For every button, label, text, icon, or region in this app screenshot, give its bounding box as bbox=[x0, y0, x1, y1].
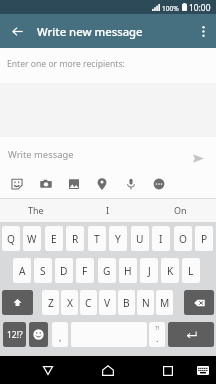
staticText: D bbox=[60, 264, 68, 278]
button[interactable]: Location bbox=[88, 174, 116, 194]
button[interactable]: Gallery bbox=[60, 174, 88, 194]
button[interactable]: The bbox=[0, 198, 72, 222]
button[interactable]: More options bbox=[190, 14, 216, 48]
button[interactable]: Recent apps bbox=[154, 356, 182, 384]
staticText: O bbox=[179, 232, 187, 246]
button[interactable]: B bbox=[118, 290, 135, 315]
button[interactable]: R bbox=[66, 226, 84, 251]
staticText: S bbox=[40, 264, 46, 278]
button[interactable]: Backspace bbox=[184, 290, 214, 315]
button[interactable]: A bbox=[13, 258, 31, 283]
staticText: On bbox=[174, 204, 187, 216]
button[interactable]: Q bbox=[2, 226, 20, 251]
staticText: ?! bbox=[155, 324, 160, 332]
staticText: . bbox=[156, 332, 159, 344]
staticText: U bbox=[136, 232, 144, 246]
button[interactable]: ?! bbox=[149, 322, 165, 347]
staticText: L bbox=[188, 264, 194, 278]
staticText: , bbox=[59, 331, 62, 343]
button[interactable]: X bbox=[61, 290, 78, 315]
button[interactable]: G bbox=[98, 258, 116, 283]
button[interactable]: M bbox=[156, 290, 173, 315]
staticText: K bbox=[167, 264, 174, 278]
button[interactable]: H bbox=[119, 258, 137, 283]
staticText: 100% bbox=[162, 4, 179, 13]
button[interactable]: V bbox=[99, 290, 116, 315]
button[interactable]: Voice message bbox=[117, 174, 145, 194]
staticText: Write new message bbox=[37, 24, 143, 39]
button[interactable]: Camera bbox=[32, 174, 60, 194]
button[interactable]: O bbox=[174, 226, 192, 251]
staticText: A bbox=[19, 264, 26, 278]
staticText: W bbox=[27, 232, 37, 246]
button[interactable]: , bbox=[52, 322, 68, 347]
button[interactable]: Sticker bbox=[3, 174, 31, 194]
staticText: T bbox=[94, 232, 100, 246]
button[interactable]: P bbox=[195, 226, 213, 251]
button[interactable]: Home bbox=[94, 356, 122, 384]
button[interactable]: F bbox=[76, 258, 94, 283]
staticText: 12!? bbox=[7, 329, 23, 341]
staticText: Q bbox=[7, 232, 15, 246]
staticText: J bbox=[148, 264, 151, 278]
staticText: 10:00 bbox=[189, 2, 211, 13]
button[interactable]: J bbox=[140, 258, 158, 283]
staticText: I bbox=[106, 204, 110, 216]
staticText: Write message bbox=[8, 148, 74, 161]
button[interactable]: Back bbox=[6, 14, 28, 48]
button[interactable]: E bbox=[45, 226, 63, 251]
button[interactable]: Y bbox=[109, 226, 127, 251]
staticText: M bbox=[160, 296, 170, 310]
staticText: F bbox=[82, 264, 88, 278]
button[interactable]: Hide keyboard bbox=[190, 356, 216, 384]
button[interactable]: More bbox=[145, 174, 173, 194]
staticText: P bbox=[201, 232, 208, 246]
staticText: C bbox=[85, 296, 92, 310]
staticText: X bbox=[67, 296, 73, 310]
button[interactable]: L bbox=[182, 258, 200, 283]
staticText: N bbox=[142, 296, 150, 310]
button[interactable]: K bbox=[161, 258, 179, 283]
staticText: E bbox=[51, 232, 57, 246]
staticText: B bbox=[123, 296, 130, 310]
button[interactable]: U bbox=[131, 226, 149, 251]
button[interactable]: Back bbox=[34, 356, 62, 384]
button[interactable]: I bbox=[72, 198, 144, 222]
button[interactable]: S bbox=[34, 258, 52, 283]
staticText: The bbox=[28, 204, 44, 216]
button[interactable]: Emoji bbox=[29, 322, 48, 347]
button[interactable]: On bbox=[144, 198, 216, 222]
button[interactable]: Z bbox=[42, 290, 59, 315]
button[interactable]: Shift bbox=[2, 290, 33, 315]
staticText: G bbox=[103, 264, 111, 278]
button[interactable]: 12!? bbox=[3, 322, 26, 347]
button[interactable]: I bbox=[152, 226, 170, 251]
button[interactable]: D bbox=[55, 258, 73, 283]
button[interactable]: N bbox=[137, 290, 154, 315]
staticText: Z bbox=[48, 296, 54, 310]
button[interactable]: T bbox=[88, 226, 106, 251]
staticText: Enter one or more recipients: bbox=[7, 58, 125, 70]
button[interactable]: Send bbox=[186, 145, 210, 168]
staticText: V bbox=[104, 296, 111, 310]
staticText: R bbox=[72, 232, 79, 246]
staticText: I bbox=[159, 232, 163, 246]
staticText: H bbox=[124, 264, 132, 278]
button[interactable]: C bbox=[80, 290, 97, 315]
button[interactable]: Enter bbox=[168, 322, 214, 347]
staticText: Y bbox=[115, 232, 121, 246]
button[interactable]: W bbox=[23, 226, 41, 251]
